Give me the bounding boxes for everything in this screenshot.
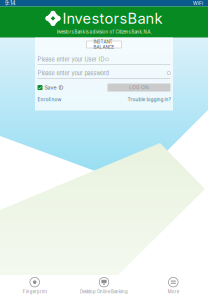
staticText: More — [168, 289, 179, 294]
staticText: Trouble logging in? — [127, 97, 170, 102]
staticText: WiFi — [193, 0, 203, 6]
button[interactable]: Desktop Online Banking — [69, 275, 139, 296]
staticText: ✓ — [37, 84, 42, 91]
button[interactable]: LOG ON — [107, 84, 170, 92]
button[interactable]: INSTANT BALANCE — [86, 41, 121, 48]
staticText: Please enter your password — [37, 70, 108, 77]
button[interactable]: ✓ — [37, 84, 63, 91]
staticText: LOG ON — [129, 85, 149, 90]
staticText: Investors Bank is a division of Citizens… — [56, 29, 151, 34]
staticText: Desktop Online Banking — [80, 289, 128, 294]
button[interactable]: Trouble logging in? — [127, 97, 170, 102]
staticText: Fingerprint — [23, 289, 47, 294]
staticText: Enroll now — [37, 97, 61, 102]
staticText: Please enter your User ID — [37, 56, 104, 63]
staticText: Save ID — [44, 84, 63, 91]
button[interactable]: Enroll now — [37, 97, 61, 102]
staticText: 9:14 — [5, 0, 16, 7]
button[interactable]: Fingerprint — [0, 275, 69, 296]
staticText: INSTANT BALANCE — [93, 39, 114, 50]
staticText: InvestorsBank — [62, 9, 162, 27]
button[interactable]: More — [139, 275, 208, 296]
